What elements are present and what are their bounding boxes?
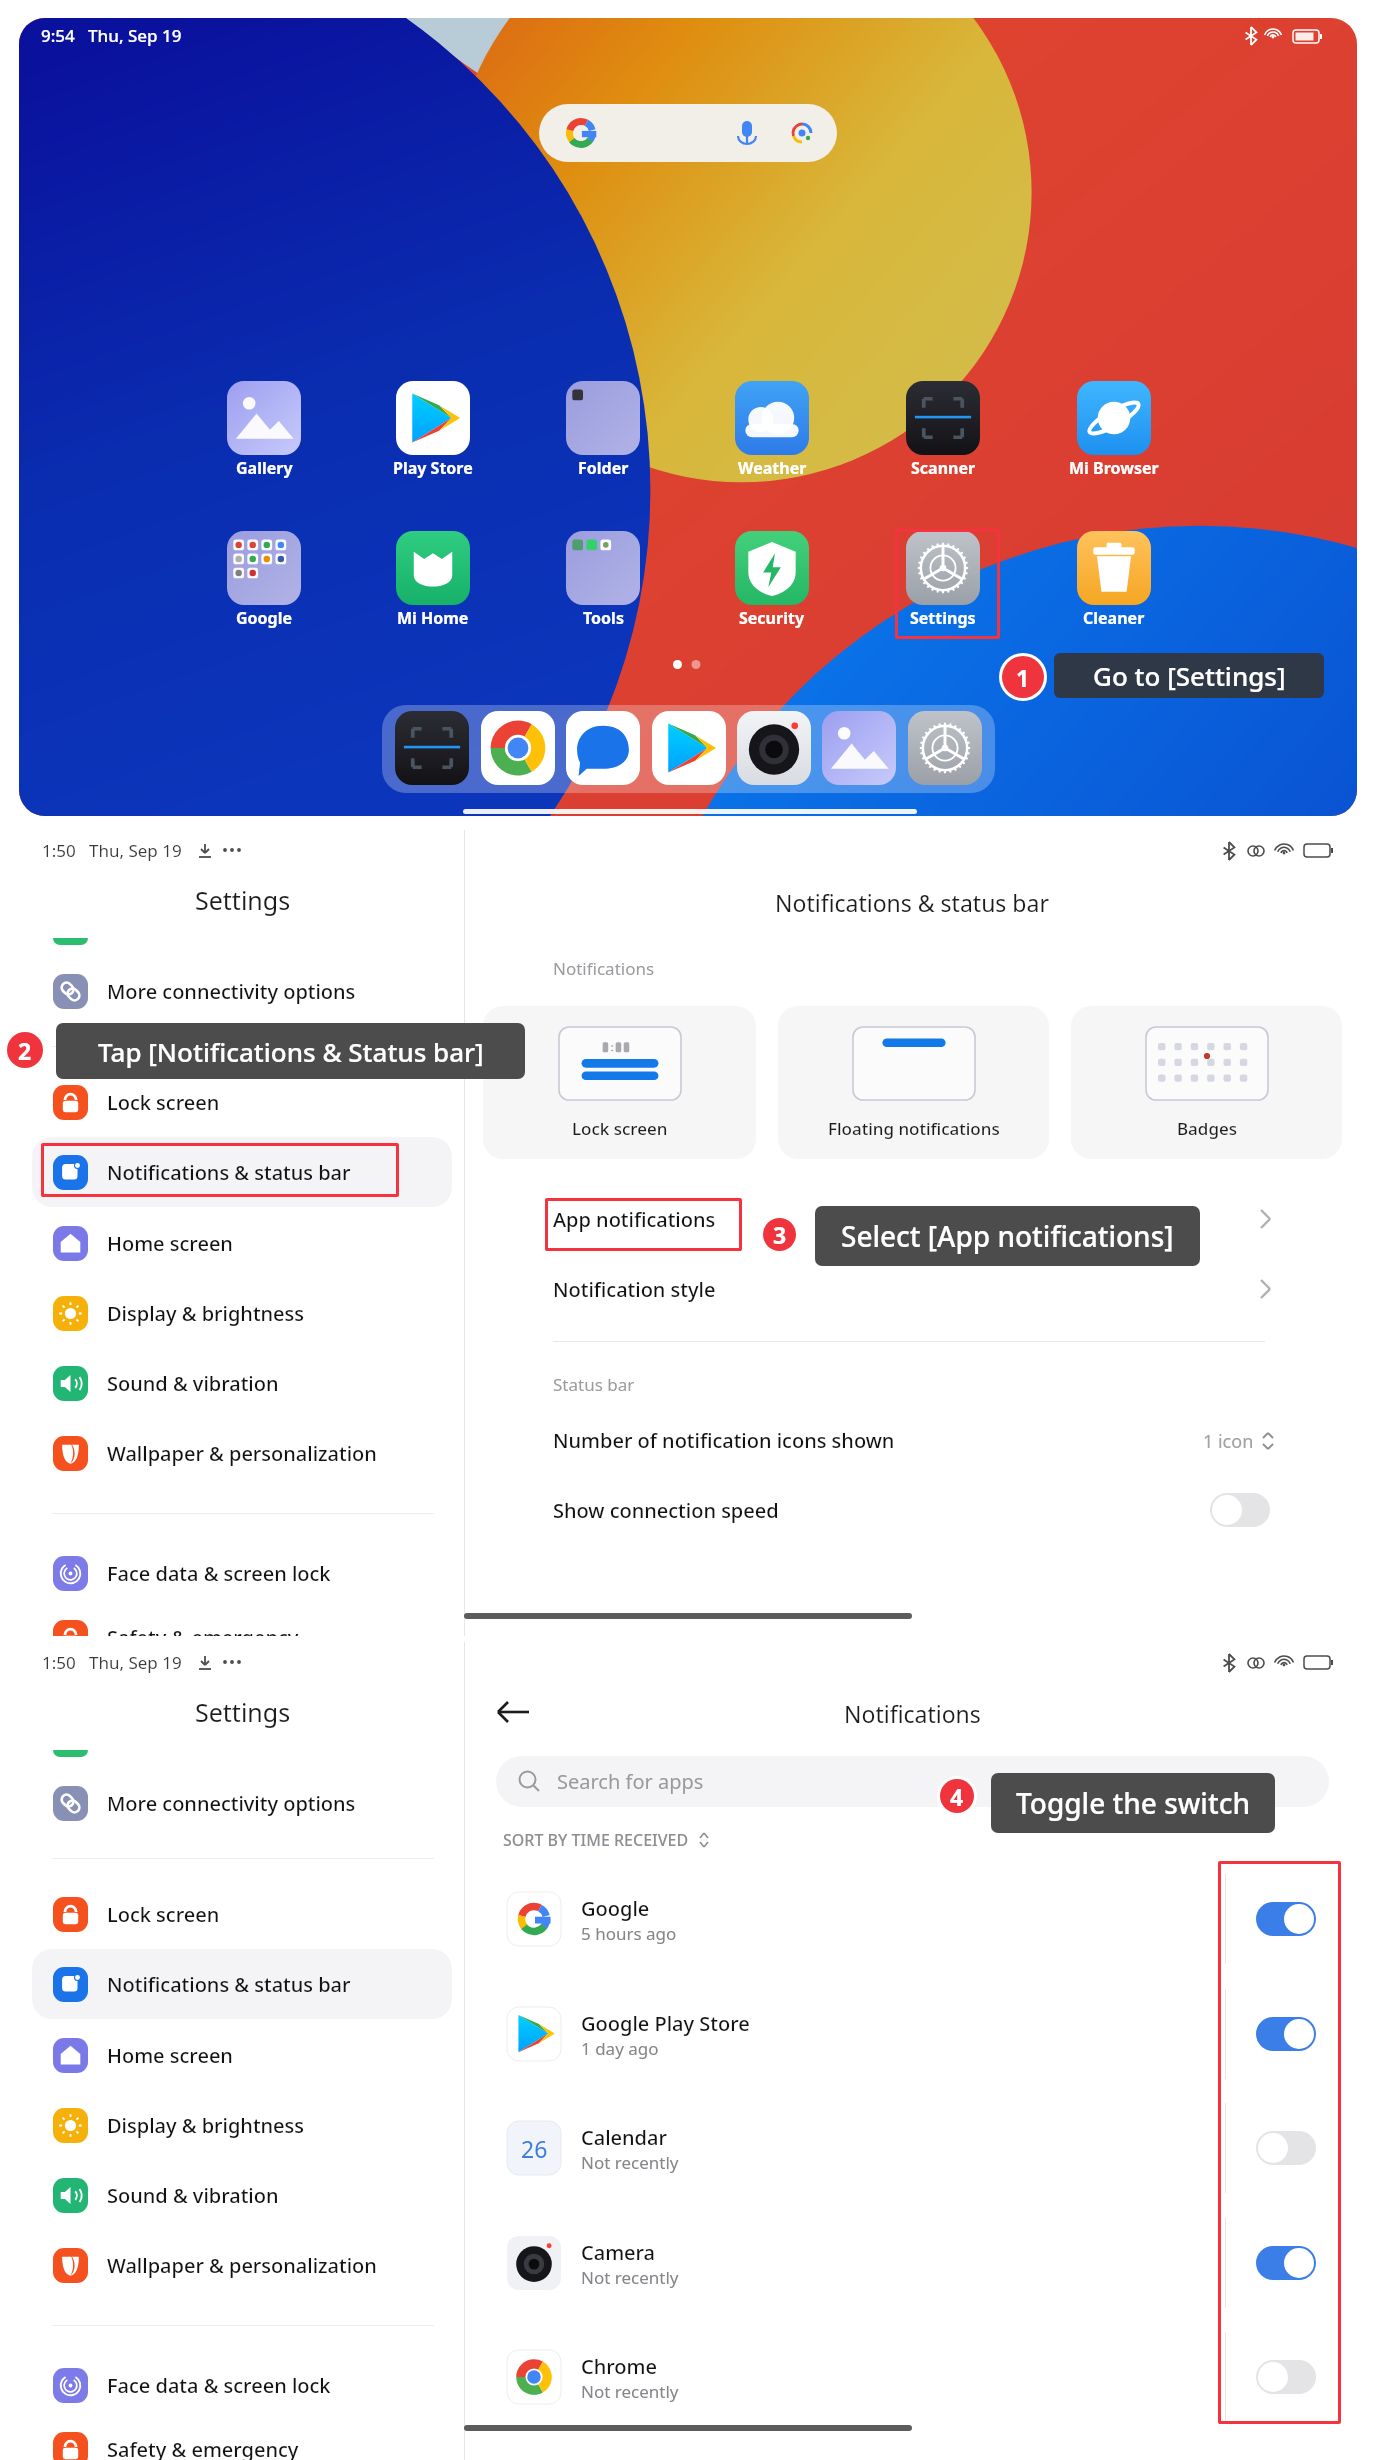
button[interactable]: Notifications & status bar	[32, 1949, 452, 2019]
button[interactable]	[1210, 1493, 1270, 1527]
button[interactable]: Search for apps	[496, 1756, 1329, 1807]
staticText: Notifications	[553, 957, 655, 980]
button[interactable]: Settings	[888, 531, 998, 645]
staticText: Scanner	[911, 457, 976, 479]
button[interactable]: Display & brightness	[32, 2090, 452, 2160]
button[interactable]: Lock screen	[483, 1006, 756, 1159]
staticText: 1:50 Thu, Sep 19	[42, 1651, 182, 1674]
button[interactable]: Play Store	[378, 381, 488, 495]
button[interactable]: Chrome	[465, 2320, 1376, 2434]
staticText: Security	[739, 607, 805, 629]
staticText: Face data & screen lock	[107, 1560, 331, 1587]
staticText: Weather	[738, 457, 807, 479]
button[interactable]: Weather	[717, 381, 827, 495]
staticText: Sound & vibration	[107, 1370, 279, 1397]
staticText: Notifications	[844, 1698, 981, 1729]
button[interactable]: Notification style	[465, 1254, 1376, 1324]
button[interactable]: Google	[465, 1862, 1376, 1976]
button[interactable]	[566, 711, 640, 785]
staticText: 3	[773, 1219, 787, 1250]
button[interactable]	[1256, 1902, 1316, 1936]
staticText: Not recently	[581, 2151, 679, 2174]
button[interactable]	[652, 711, 726, 785]
button[interactable]: Number of notification icons shown	[465, 1405, 1376, 1475]
staticText: Lock screen	[572, 1117, 668, 1140]
staticText: Wallpaper & personalization	[107, 1440, 377, 1467]
staticText: Search for apps	[557, 1768, 704, 1795]
button[interactable]	[1256, 2131, 1316, 2165]
staticText: Notification style	[553, 1276, 716, 1303]
staticText: Number of notification icons shown	[553, 1427, 895, 1454]
button[interactable]: Security	[717, 531, 827, 645]
button[interactable]: Lock screen	[32, 1879, 452, 1949]
staticText: Toggle the switch	[1016, 1784, 1250, 1822]
button[interactable]: Badges	[1071, 1006, 1342, 1159]
button[interactable]: App notifications	[465, 1184, 1376, 1254]
staticText: Face data & screen lock	[107, 2372, 331, 2399]
button[interactable]	[1256, 2360, 1316, 2394]
button[interactable]	[908, 711, 982, 785]
button[interactable]: Display & brightness	[32, 1278, 452, 1348]
button[interactable]	[481, 711, 555, 785]
button[interactable]: Home screen	[32, 1208, 452, 1278]
button[interactable]: Sound & vibration	[32, 1348, 452, 1418]
staticText: 2	[18, 1035, 32, 1066]
button[interactable]: SORT BY TIME RECEIVED	[503, 1825, 713, 1855]
button[interactable]: Sound & vibration	[32, 2160, 452, 2230]
button[interactable]: More connectivity options	[32, 1768, 452, 1838]
staticText: Notifications & status bar	[775, 887, 1049, 918]
button[interactable]	[395, 711, 469, 785]
staticText: 26	[521, 2133, 548, 2164]
button[interactable]: 26	[465, 2091, 1376, 2205]
button[interactable]: Google Play Store	[465, 1977, 1376, 2091]
button[interactable]: Camera	[465, 2206, 1376, 2320]
button[interactable]: Wallpaper & personalization	[32, 1418, 452, 1488]
staticText: Show connection speed	[553, 1497, 779, 1524]
button[interactable]: Folder	[548, 381, 658, 495]
staticText: Display & brightness	[107, 2112, 304, 2139]
button[interactable]: Wallpaper & personalization	[32, 2230, 452, 2300]
staticText: Google Play Store	[581, 2010, 750, 2036]
staticText: Go to [Settings]	[1093, 658, 1286, 693]
button[interactable]: Home screen	[32, 2020, 452, 2090]
button[interactable]: Mi Browser	[1059, 381, 1169, 495]
button[interactable]: Safety & emergency	[32, 2414, 452, 2460]
button[interactable]	[737, 711, 811, 785]
button[interactable]: Floating notifications	[778, 1006, 1049, 1159]
button[interactable]	[1256, 2017, 1316, 2051]
staticText: Camera	[581, 2239, 656, 2265]
staticText: Settings	[195, 883, 291, 917]
staticText: Floating notifications	[828, 1117, 1000, 1140]
staticText: Home screen	[107, 2042, 233, 2069]
staticText: Chrome	[581, 2353, 657, 2379]
button[interactable]: Mi Home	[378, 531, 488, 645]
button[interactable]: Gallery	[209, 381, 319, 495]
button[interactable]: Lock screen	[32, 1067, 452, 1137]
staticText: Mi Home	[397, 607, 469, 629]
staticText: Safety & emergency	[107, 2436, 299, 2460]
button[interactable]: Google	[209, 531, 319, 645]
staticText: Google	[581, 1895, 650, 1921]
staticText: Mi Browser	[1069, 457, 1159, 479]
button[interactable]: Show connection speed	[465, 1475, 1376, 1545]
staticText: 5 hours ago	[581, 1922, 677, 1945]
button[interactable]: Notifications & status bar	[32, 1137, 452, 1207]
staticText: Play Store	[393, 457, 473, 479]
staticText: Settings	[910, 607, 976, 629]
button[interactable]: Face data & screen lock	[32, 1538, 452, 1608]
staticText: More connectivity options	[107, 1790, 356, 1817]
button[interactable]: Scanner	[888, 381, 998, 495]
button[interactable]	[822, 711, 896, 785]
button[interactable]: Safety & emergency	[32, 1602, 452, 1636]
staticText: App notifications	[553, 1206, 716, 1233]
button[interactable]: Back	[487, 1686, 539, 1738]
staticText: Cleaner	[1083, 607, 1145, 629]
staticText: 1	[1016, 662, 1030, 693]
button[interactable]: Tools	[548, 531, 658, 645]
button[interactable]	[539, 104, 837, 162]
button[interactable]: Face data & screen lock	[32, 2350, 452, 2420]
button[interactable]: More connectivity options	[32, 956, 452, 1026]
button[interactable]: Cleaner	[1059, 531, 1169, 645]
button[interactable]	[1256, 2246, 1316, 2280]
staticText: Settings	[195, 1695, 291, 1729]
